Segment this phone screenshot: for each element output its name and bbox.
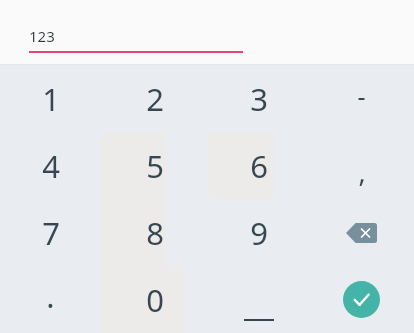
button[interactable]: 3 bbox=[209, 65, 309, 132]
staticText: 5 bbox=[146, 145, 164, 187]
button[interactable]: , bbox=[309, 132, 414, 199]
button[interactable]: 123 bbox=[29, 0, 243, 53]
button[interactable]: 7 bbox=[0, 199, 101, 266]
button[interactable]: Backspace bbox=[309, 199, 414, 266]
button[interactable]: . bbox=[0, 266, 101, 333]
button[interactable]: Confirm bbox=[309, 266, 414, 333]
staticText: , bbox=[358, 153, 366, 190]
staticText: 123 bbox=[29, 26, 55, 46]
button[interactable]: 1 bbox=[0, 65, 101, 132]
button[interactable]: Space bbox=[209, 266, 309, 333]
staticText: 4 bbox=[42, 145, 60, 187]
button[interactable]: 0 bbox=[101, 266, 209, 333]
staticText: 0 bbox=[146, 279, 164, 321]
button[interactable]: 6 bbox=[209, 132, 309, 199]
button[interactable]: 8 bbox=[101, 199, 209, 266]
button[interactable]: 5 bbox=[101, 132, 209, 199]
button[interactable]: Backspace bbox=[346, 223, 377, 243]
staticText: 1 bbox=[42, 78, 60, 120]
button[interactable]: - bbox=[309, 65, 414, 132]
button[interactable]: Space bbox=[236, 279, 282, 321]
staticText: - bbox=[357, 79, 366, 113]
staticText: 2 bbox=[146, 78, 164, 120]
staticText: 8 bbox=[146, 212, 164, 254]
staticText: 3 bbox=[250, 78, 268, 120]
button[interactable]: 9 bbox=[209, 199, 309, 266]
button[interactable]: 2 bbox=[101, 65, 209, 132]
button[interactable]: 4 bbox=[0, 132, 101, 199]
button[interactable]: Confirm bbox=[343, 281, 380, 318]
staticText: 9 bbox=[250, 212, 268, 254]
staticText: . bbox=[46, 275, 55, 317]
staticText: 6 bbox=[250, 145, 268, 187]
staticText: 7 bbox=[42, 212, 60, 254]
